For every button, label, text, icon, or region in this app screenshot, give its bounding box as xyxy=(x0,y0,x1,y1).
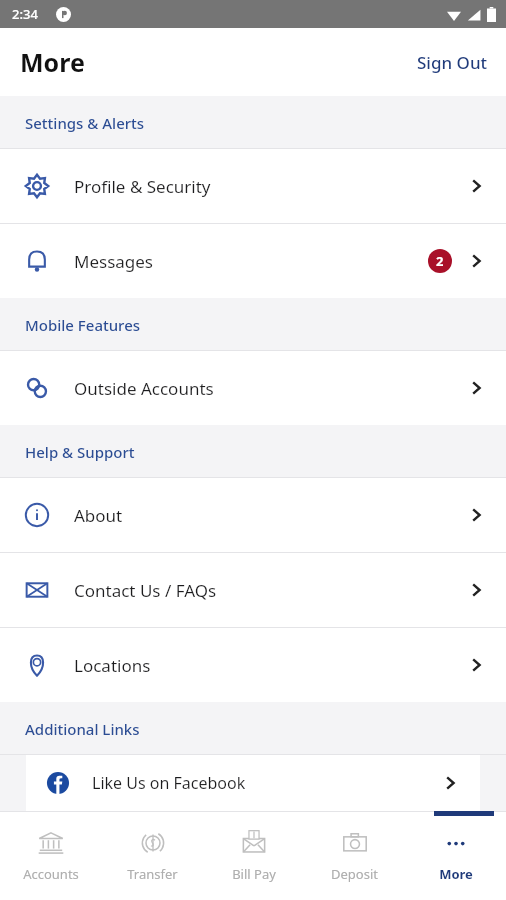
button[interactable]: Deposit xyxy=(304,811,405,900)
staticText: More xyxy=(20,45,85,79)
button[interactable]: Sign Out xyxy=(399,41,506,84)
button[interactable]: Contact Us / FAQs xyxy=(0,553,506,627)
staticText: Outside Accounts xyxy=(74,377,214,400)
staticText: Messages xyxy=(74,250,154,273)
staticText: Accounts xyxy=(23,865,79,883)
button[interactable]: Locations xyxy=(0,628,506,702)
staticText: Transfer xyxy=(127,865,178,883)
staticText: About xyxy=(74,504,123,527)
other: Transfer xyxy=(139,829,167,857)
staticText: Mobile Features xyxy=(25,315,141,335)
staticText: Contact Us / FAQs xyxy=(74,579,217,602)
button[interactable]: Bill Pay xyxy=(203,811,304,900)
staticText: Like Us on Facebook xyxy=(92,772,246,794)
other: Accounts xyxy=(37,829,65,857)
button[interactable]: Transfer xyxy=(102,811,203,900)
button[interactable]: More xyxy=(405,811,506,900)
staticText: 2:34 xyxy=(12,5,38,23)
staticText: Bill Pay xyxy=(232,865,276,883)
button[interactable]: About xyxy=(0,478,506,552)
other: More xyxy=(442,829,470,857)
button[interactable]: Like Us on Facebook xyxy=(26,755,480,811)
other: Deposit xyxy=(341,829,369,857)
staticText: Profile & Security xyxy=(74,175,211,198)
staticText: Help & Support xyxy=(25,442,135,462)
staticText: 2 xyxy=(436,252,444,270)
button[interactable]: Profile & Security xyxy=(0,149,506,223)
staticText: Locations xyxy=(74,654,151,677)
button[interactable]: Outside Accounts xyxy=(0,351,506,425)
staticText: Additional Links xyxy=(25,719,140,739)
staticText: Deposit xyxy=(331,865,378,883)
staticText: More xyxy=(439,865,473,883)
other: Bill Pay xyxy=(240,829,268,857)
staticText: Sign Out xyxy=(417,51,488,74)
staticText: Settings & Alerts xyxy=(25,113,145,133)
button[interactable]: Messages xyxy=(0,224,506,298)
button[interactable]: Accounts xyxy=(0,811,102,900)
